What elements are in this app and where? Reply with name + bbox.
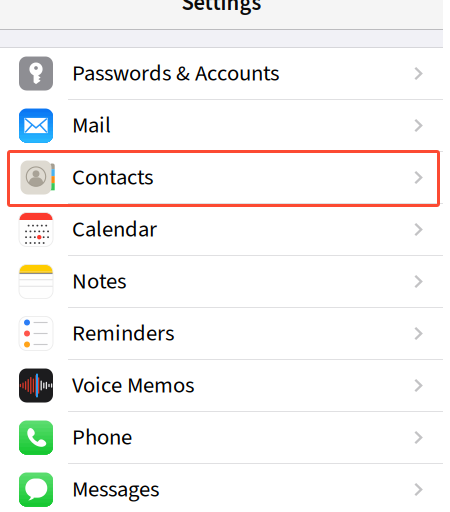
button[interactable]: Passwords & Accounts bbox=[0, 48, 443, 100]
staticText: Calendar bbox=[72, 213, 157, 246]
button[interactable]: Mail bbox=[0, 100, 443, 152]
staticText: Mail bbox=[72, 109, 111, 142]
staticText: Settings bbox=[181, 0, 261, 19]
staticText: Voice Memos bbox=[72, 369, 194, 402]
staticText: Contacts bbox=[72, 161, 153, 194]
staticText: Reminders bbox=[72, 317, 174, 350]
button[interactable]: Contacts bbox=[0, 152, 443, 204]
button[interactable]: Messages bbox=[0, 464, 443, 512]
button[interactable]: Phone bbox=[0, 412, 443, 464]
staticText: Messages bbox=[72, 473, 159, 506]
button[interactable]: Calendar bbox=[0, 204, 443, 256]
staticText: Passwords & Accounts bbox=[72, 57, 279, 90]
button[interactable]: Notes bbox=[0, 256, 443, 308]
button[interactable]: Voice Memos bbox=[0, 360, 443, 412]
button[interactable]: Reminders bbox=[0, 308, 443, 360]
staticText: Notes bbox=[72, 265, 126, 298]
staticText: Phone bbox=[72, 421, 132, 454]
